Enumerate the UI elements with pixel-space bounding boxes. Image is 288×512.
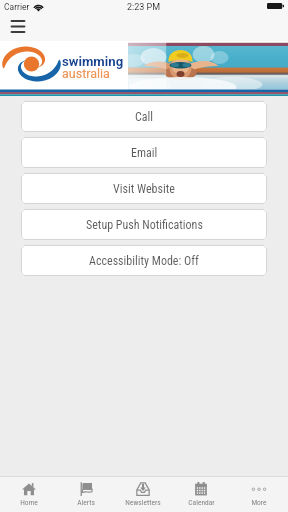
- staticText: Call: [135, 110, 154, 124]
- staticText: More: [251, 498, 267, 507]
- staticText: Newsletters: [125, 498, 161, 507]
- staticText: Visit Website: [113, 182, 175, 196]
- button[interactable]: Alerts: [57, 477, 114, 512]
- button[interactable]: Calendar: [172, 477, 230, 512]
- button[interactable]: Call: [21, 101, 267, 132]
- staticText: Accessibility Mode: Off: [89, 254, 199, 268]
- staticText: 2:23 PM: [127, 2, 161, 13]
- button[interactable]: Newsletters: [114, 477, 172, 512]
- button[interactable]: Menu: [3, 15, 33, 37]
- staticText: australia: [62, 66, 110, 81]
- staticText: swimming: [62, 54, 124, 69]
- staticText: Alerts: [77, 498, 95, 507]
- staticText: Email: [131, 146, 158, 160]
- button[interactable]: Visit Website: [21, 173, 267, 204]
- button[interactable]: Accessibility Mode: Off: [21, 245, 267, 276]
- button[interactable]: Setup Push Notifications: [21, 209, 267, 240]
- staticText: Calendar: [188, 498, 215, 507]
- button[interactable]: More: [230, 477, 288, 512]
- staticText: Setup Push Notifications: [86, 218, 203, 232]
- staticText: Carrier: [4, 2, 30, 12]
- button[interactable]: Home: [0, 477, 57, 512]
- staticText: Home: [20, 498, 38, 507]
- button[interactable]: Email: [21, 137, 267, 168]
